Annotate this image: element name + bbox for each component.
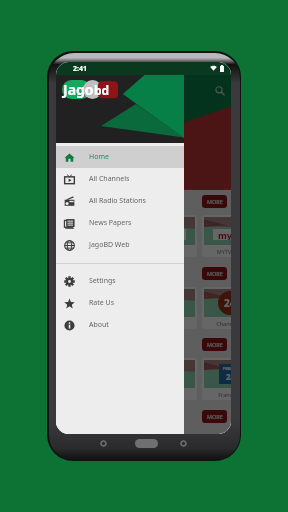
button[interactable]: All Radio Stations	[56, 190, 184, 212]
button[interactable]: JagoBD Web	[56, 234, 184, 256]
staticText: Channel24	[81, 320, 137, 327]
staticText: 24	[226, 371, 231, 382]
staticText: MORE	[207, 198, 223, 205]
button[interactable]: FRANCE	[202, 358, 231, 400]
button[interactable]: MORE	[202, 195, 227, 208]
staticText: my	[218, 229, 231, 240]
staticText: JagoBD Web	[89, 240, 130, 250]
button[interactable]: my	[141, 215, 197, 257]
button[interactable]: Home	[135, 439, 158, 448]
staticText: All Channels	[89, 174, 130, 184]
staticText: 24	[103, 296, 115, 310]
staticText: MYTV | J...	[202, 248, 231, 255]
button[interactable]: Settings	[56, 270, 184, 292]
staticText: Jago	[63, 80, 94, 99]
button[interactable]: Back	[100, 440, 107, 447]
button[interactable]: MORE	[202, 410, 227, 423]
staticText: MYTV | J...	[141, 248, 197, 255]
staticText: FRANCE	[223, 366, 231, 371]
button[interactable]: my	[81, 215, 137, 257]
button[interactable]: All Channels	[56, 168, 184, 190]
staticText: Channel24	[202, 320, 231, 327]
staticText: 24	[224, 296, 231, 310]
staticText: Rate Us	[89, 298, 115, 308]
button[interactable]: 24	[81, 287, 137, 329]
button[interactable]: Recents	[180, 440, 187, 447]
button[interactable]: Rate Us	[56, 292, 184, 314]
staticText: News Papers	[89, 218, 132, 228]
button[interactable]: About	[56, 314, 184, 336]
staticText: 2:41	[73, 64, 87, 74]
staticText: bd	[94, 82, 110, 98]
staticText: Home	[89, 152, 109, 162]
staticText: France24	[202, 391, 231, 398]
button[interactable]: my	[202, 215, 231, 257]
staticText: MYTV | J...	[81, 248, 137, 255]
button[interactable]: MORE	[202, 338, 227, 351]
button[interactable]: Search	[212, 83, 227, 98]
staticText: About	[89, 320, 109, 330]
staticText: All Radio Stations	[89, 196, 146, 206]
staticText: MORE	[207, 341, 223, 348]
staticText: MORE	[207, 270, 223, 277]
staticText: Channel24	[141, 320, 197, 327]
staticText: MORE	[207, 413, 223, 420]
button[interactable]: News Papers	[56, 212, 184, 234]
staticText: Settings	[89, 276, 116, 286]
button[interactable]: FRANCE	[141, 358, 197, 400]
staticText: France24	[141, 391, 197, 398]
button[interactable]: Home	[56, 146, 184, 168]
button[interactable]: 24	[202, 287, 231, 329]
button[interactable]: MORE	[202, 267, 227, 280]
button[interactable]: 24	[141, 287, 197, 329]
